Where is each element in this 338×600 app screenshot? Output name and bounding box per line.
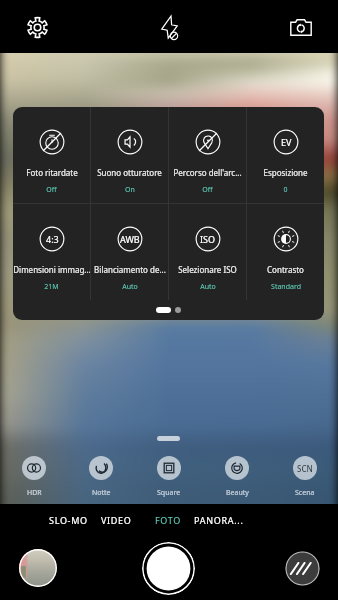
staticText: Suono otturatore <box>97 167 162 178</box>
button[interactable]: PANORA... <box>187 507 251 533</box>
staticText: Dimensioni immag... <box>13 264 91 275</box>
button[interactable]: Switch camera <box>283 9 319 45</box>
button[interactable]: Notte <box>89 456 113 498</box>
staticText: HDR <box>27 488 42 498</box>
staticText: Off <box>46 185 57 195</box>
staticText: Foto ritardate <box>26 167 78 178</box>
staticText: Auto <box>122 282 138 292</box>
button[interactable]: Flash off <box>151 9 187 45</box>
button[interactable]: HDR <box>22 456 46 498</box>
staticText: Auto <box>200 282 216 292</box>
staticText: PANORA... <box>194 514 244 526</box>
button[interactable]: Foto ritardate <box>13 107 90 203</box>
staticText: Esposizione <box>263 167 308 178</box>
staticText: ISO <box>200 233 216 245</box>
staticText: Selezionare ISO <box>178 264 237 275</box>
staticText: Standard <box>271 282 301 292</box>
staticText: Scena <box>295 488 315 498</box>
staticText: Bilanciamento de... <box>94 264 166 275</box>
button[interactable]: Gallery <box>19 549 57 587</box>
button[interactable]: VIDEO <box>94 507 139 533</box>
button[interactable]: Shutter <box>142 542 195 595</box>
staticText: Notte <box>92 488 111 498</box>
staticText: 4:3 <box>46 233 59 245</box>
staticText: 21M <box>44 282 59 292</box>
staticText: VIDEO <box>101 514 132 526</box>
button[interactable]: SLO-MO <box>42 507 95 533</box>
staticText: Contrasto <box>267 264 304 275</box>
button[interactable]: SCN <box>293 456 317 498</box>
button[interactable]: 4:3 <box>13 204 90 300</box>
staticText: SCN <box>297 463 313 474</box>
button[interactable]: FOTO <box>148 507 189 533</box>
button[interactable]: Percorso dell'arc... <box>169 107 246 203</box>
button[interactable]: AWB <box>91 204 168 300</box>
button[interactable]: EV <box>247 107 324 203</box>
staticText: On <box>125 185 135 195</box>
staticText: Percorso dell'arc... <box>173 167 242 178</box>
staticText: SLO-MO <box>49 514 88 526</box>
staticText: Off <box>202 185 213 195</box>
staticText: AWB <box>120 233 140 245</box>
staticText: Beauty <box>226 488 249 498</box>
button[interactable]: Filters <box>285 551 320 586</box>
button[interactable]: Beauty <box>225 456 249 498</box>
button[interactable]: Contrasto <box>247 204 324 300</box>
staticText: FOTO <box>155 514 182 526</box>
button[interactable]: ISO <box>169 204 246 300</box>
button[interactable]: Settings <box>19 9 55 45</box>
button[interactable]: Square <box>157 456 181 498</box>
button[interactable]: Suono otturatore <box>91 107 168 203</box>
staticText: 0 <box>283 185 288 195</box>
staticText: Square <box>157 488 181 498</box>
staticText: EV <box>281 136 292 148</box>
